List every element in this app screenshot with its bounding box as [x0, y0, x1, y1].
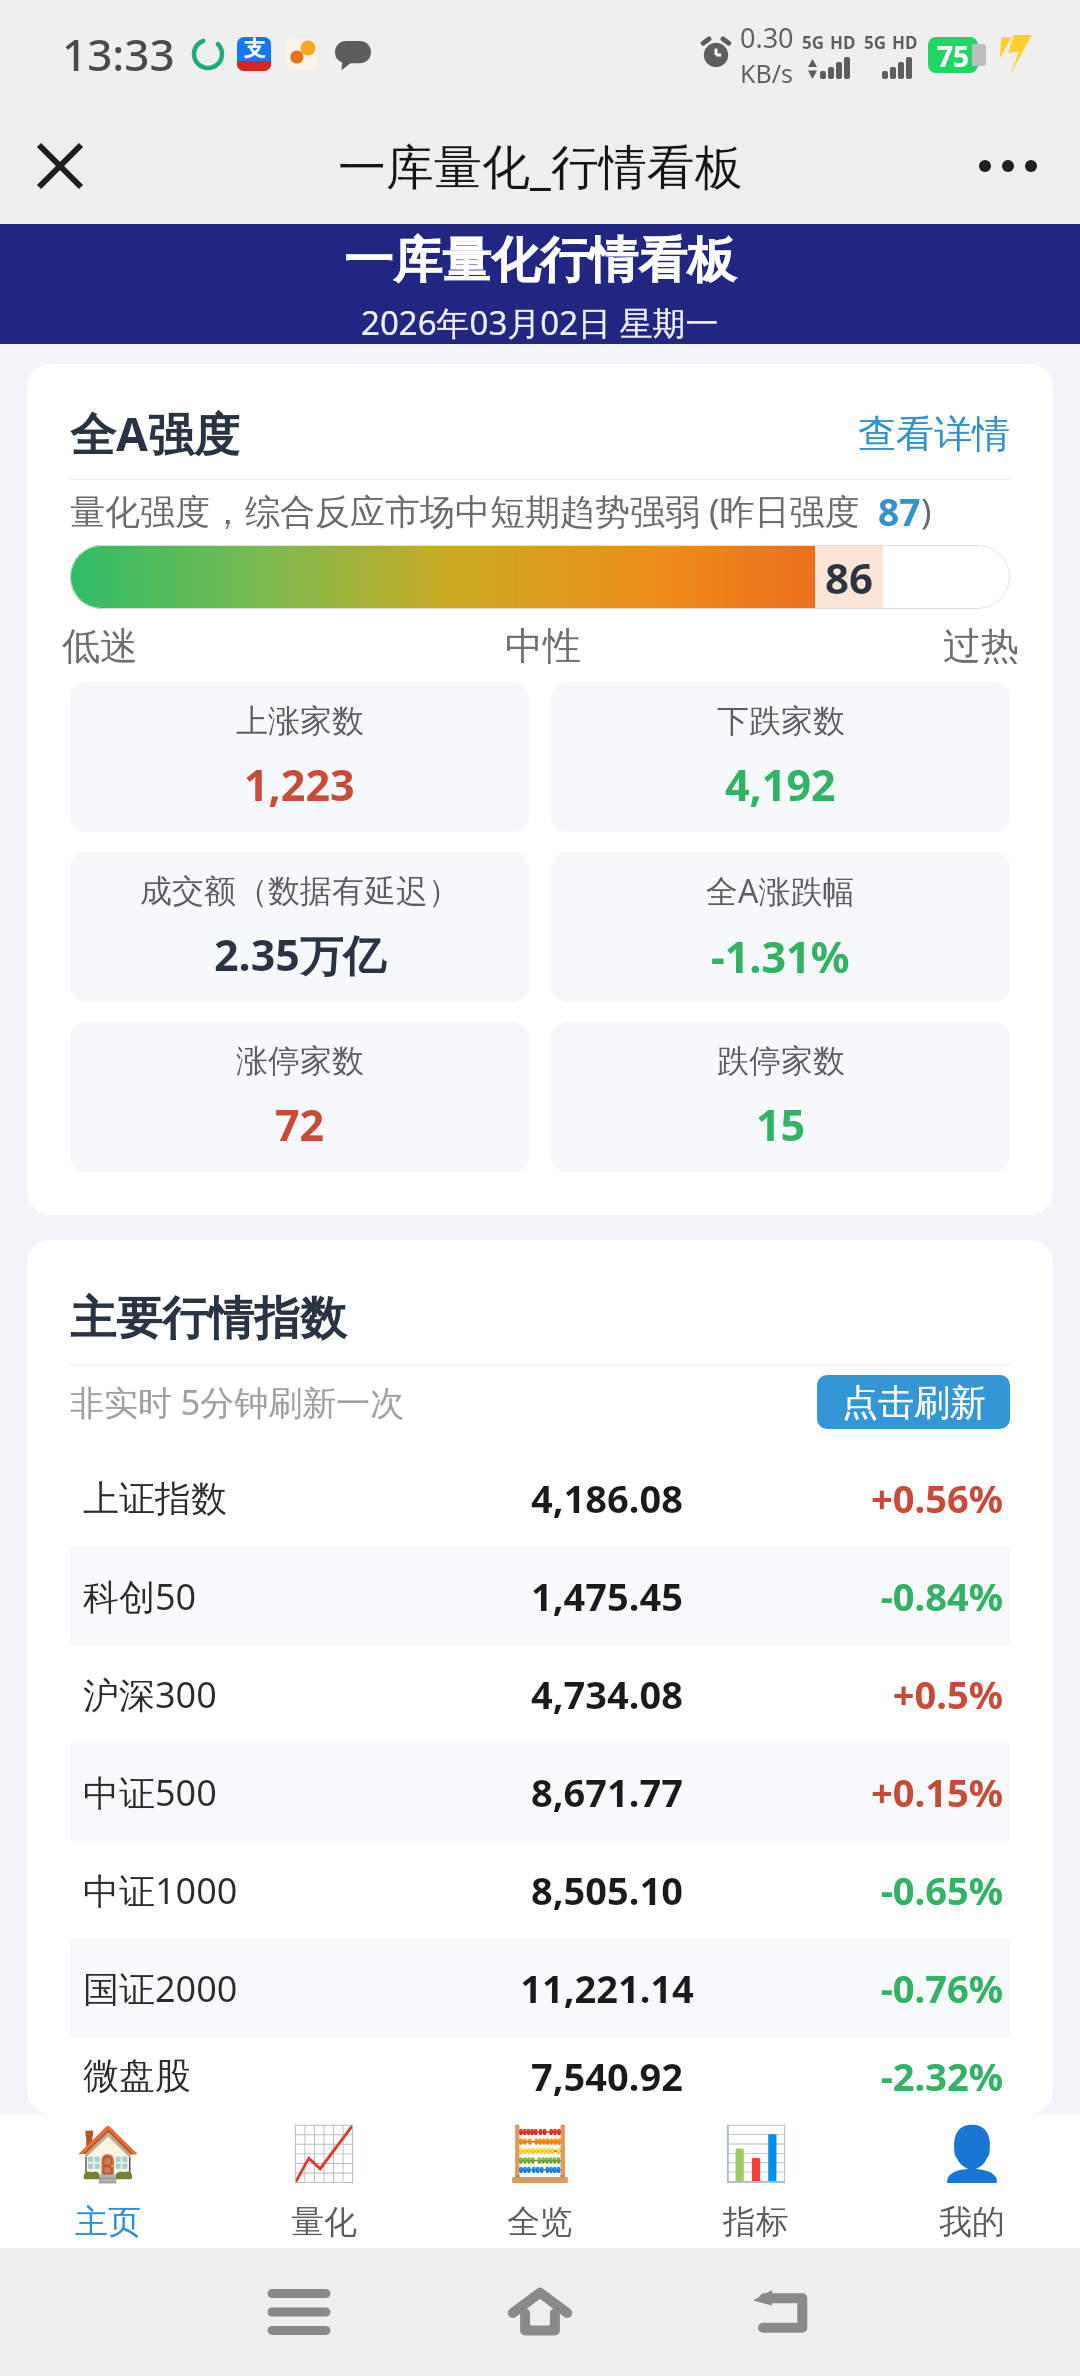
- button[interactable]: 微盘股: [70, 2037, 1010, 2114]
- staticText: 上证指数: [83, 1476, 461, 1521]
- staticText: 4,186.08: [461, 1472, 753, 1524]
- staticText: 点击刷新: [842, 1380, 986, 1425]
- staticText: 1,223: [244, 755, 355, 814]
- staticText: 中证500: [83, 1768, 461, 1817]
- button[interactable]: 跌停家数: [551, 1022, 1010, 1172]
- button[interactable]: 中证500: [70, 1743, 1010, 1841]
- staticText: 沪深300: [83, 1670, 461, 1719]
- staticText: 成交额（数据有延迟）: [140, 871, 460, 911]
- staticText: 查看详情: [858, 410, 1010, 458]
- staticText: 中性: [505, 622, 581, 664]
- button[interactable]: 上涨家数: [70, 682, 529, 832]
- staticText: 5G: [802, 31, 825, 54]
- button[interactable]: 点击刷新: [817, 1375, 1010, 1429]
- staticText: 全A强度: [70, 402, 240, 465]
- staticText: 主页: [75, 2201, 141, 2243]
- staticText: 🧮: [507, 2123, 573, 2185]
- staticText: 全览: [507, 2201, 573, 2243]
- staticText: 全A涨跌幅: [706, 869, 855, 913]
- staticText: +0.56%: [753, 1472, 1003, 1524]
- staticText: 国证2000: [83, 1964, 461, 2013]
- staticText: 86: [825, 549, 874, 606]
- staticText: 📈: [291, 2123, 357, 2185]
- staticText: 科创50: [83, 1572, 461, 1621]
- staticText: 72: [275, 1095, 325, 1154]
- staticText: +0.15%: [753, 1766, 1003, 1818]
- staticText: 2026年03月02日 星期一: [361, 300, 719, 344]
- staticText: 15: [756, 1095, 806, 1154]
- staticText: 我的: [939, 2201, 1005, 2243]
- staticText: 涨停家数: [236, 1041, 364, 1081]
- button[interactable]: 下跌家数: [551, 682, 1010, 832]
- button[interactable]: 沪深300: [70, 1645, 1010, 1743]
- staticText: 🏠: [75, 2123, 141, 2185]
- button[interactable]: 🏠: [0, 2114, 216, 2248]
- staticText: 👤: [939, 2123, 1005, 2185]
- button[interactable]: 全A涨跌幅: [551, 852, 1010, 1002]
- staticText: 非实时 5分钟刷新一次: [70, 1379, 405, 1425]
- staticText: 低迷: [62, 622, 138, 664]
- staticText: 87: [878, 486, 921, 536]
- staticText: 11,221.14: [461, 1962, 753, 2014]
- staticText: 指标: [723, 2201, 789, 2243]
- staticText: 75: [937, 37, 970, 73]
- staticText: 一库量化行情看板: [344, 230, 736, 292]
- staticText: -0.65%: [753, 1864, 1003, 1916]
- button[interactable]: More options: [958, 120, 1058, 212]
- button[interactable]: Close: [14, 120, 106, 212]
- staticText: 13:33: [62, 24, 175, 84]
- staticText: 7,540.92: [461, 2050, 753, 2102]
- button[interactable]: 科创50: [70, 1547, 1010, 1645]
- staticText: -2.32%: [753, 2050, 1003, 2102]
- button[interactable]: Recent apps: [239, 2248, 359, 2376]
- staticText: 一库量化_行情看板: [338, 133, 743, 199]
- staticText: 主要行情指数: [70, 1290, 346, 1348]
- staticText: 过热: [943, 622, 1019, 664]
- staticText: 跌停家数: [717, 1041, 845, 1081]
- button[interactable]: 查看详情: [858, 410, 1010, 458]
- staticText: 4,192: [725, 755, 836, 814]
- button[interactable]: 📈: [216, 2114, 432, 2248]
- staticText: -1.31%: [711, 927, 850, 986]
- button[interactable]: 涨停家数: [70, 1022, 529, 1172]
- button[interactable]: 上证指数: [70, 1449, 1010, 1547]
- staticText: 2.35万亿: [214, 925, 386, 984]
- staticText: 支: [244, 37, 265, 62]
- staticText: 微盘股: [83, 2053, 461, 2098]
- staticText: -0.84%: [753, 1570, 1003, 1622]
- staticText: ): [921, 487, 932, 535]
- staticText: 1,475.45: [461, 1570, 753, 1622]
- staticText: HD: [892, 31, 918, 54]
- staticText: 下跌家数: [717, 701, 845, 741]
- button[interactable]: 📊: [648, 2114, 864, 2248]
- staticText: 📊: [723, 2123, 789, 2185]
- staticText: 8,671.77: [461, 1766, 753, 1818]
- button[interactable]: Home: [480, 2248, 600, 2376]
- staticText: KB/s: [740, 56, 794, 90]
- staticText: 中证1000: [83, 1866, 461, 1915]
- staticText: -0.76%: [753, 1962, 1003, 2014]
- staticText: 0.30: [740, 19, 794, 56]
- button[interactable]: Back: [721, 2248, 841, 2376]
- button[interactable]: 国证2000: [70, 1939, 1010, 2037]
- staticText: 4,734.08: [461, 1668, 753, 1720]
- staticText: 量化: [291, 2201, 357, 2243]
- button[interactable]: 成交额（数据有延迟）: [70, 852, 529, 1002]
- staticText: 上涨家数: [236, 701, 364, 741]
- staticText: 8,505.10: [461, 1864, 753, 1916]
- button[interactable]: 👤: [864, 2114, 1080, 2248]
- staticText: +0.5%: [753, 1668, 1003, 1720]
- button[interactable]: 🧮: [432, 2114, 648, 2248]
- button[interactable]: 中证1000: [70, 1841, 1010, 1939]
- staticText: 量化强度，综合反应市场中短期趋势强弱 (昨日强度: [70, 487, 860, 535]
- staticText: 5G: [864, 31, 887, 54]
- staticText: HD: [830, 31, 856, 54]
